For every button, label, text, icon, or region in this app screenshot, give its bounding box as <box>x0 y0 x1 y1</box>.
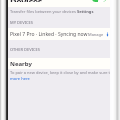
staticText: Manage <box>88 32 104 37</box>
staticText: Nearby <box>10 60 32 68</box>
button[interactable]: To pair a new device, keep it close by a… <box>10 70 120 75</box>
staticText: MY DEVICES <box>10 20 34 25</box>
button[interactable]: Pixel 7 Pro · Linked · Syncing now <box>8 28 110 40</box>
staticText: Pixel 7 Pro · Linked · Syncing now <box>10 31 88 38</box>
button[interactable]: Toggle on <box>92 0 106 2</box>
staticText: Transfer files between your devices <box>10 9 77 14</box>
staticText: Devices <box>10 0 43 2</box>
button[interactable]: more here <box>10 76 30 81</box>
button[interactable]: More information <box>107 30 108 39</box>
staticText: Settings <box>77 9 94 14</box>
button[interactable]: Nearby <box>8 58 110 69</box>
staticText: OTHER DEVICES <box>10 47 41 52</box>
